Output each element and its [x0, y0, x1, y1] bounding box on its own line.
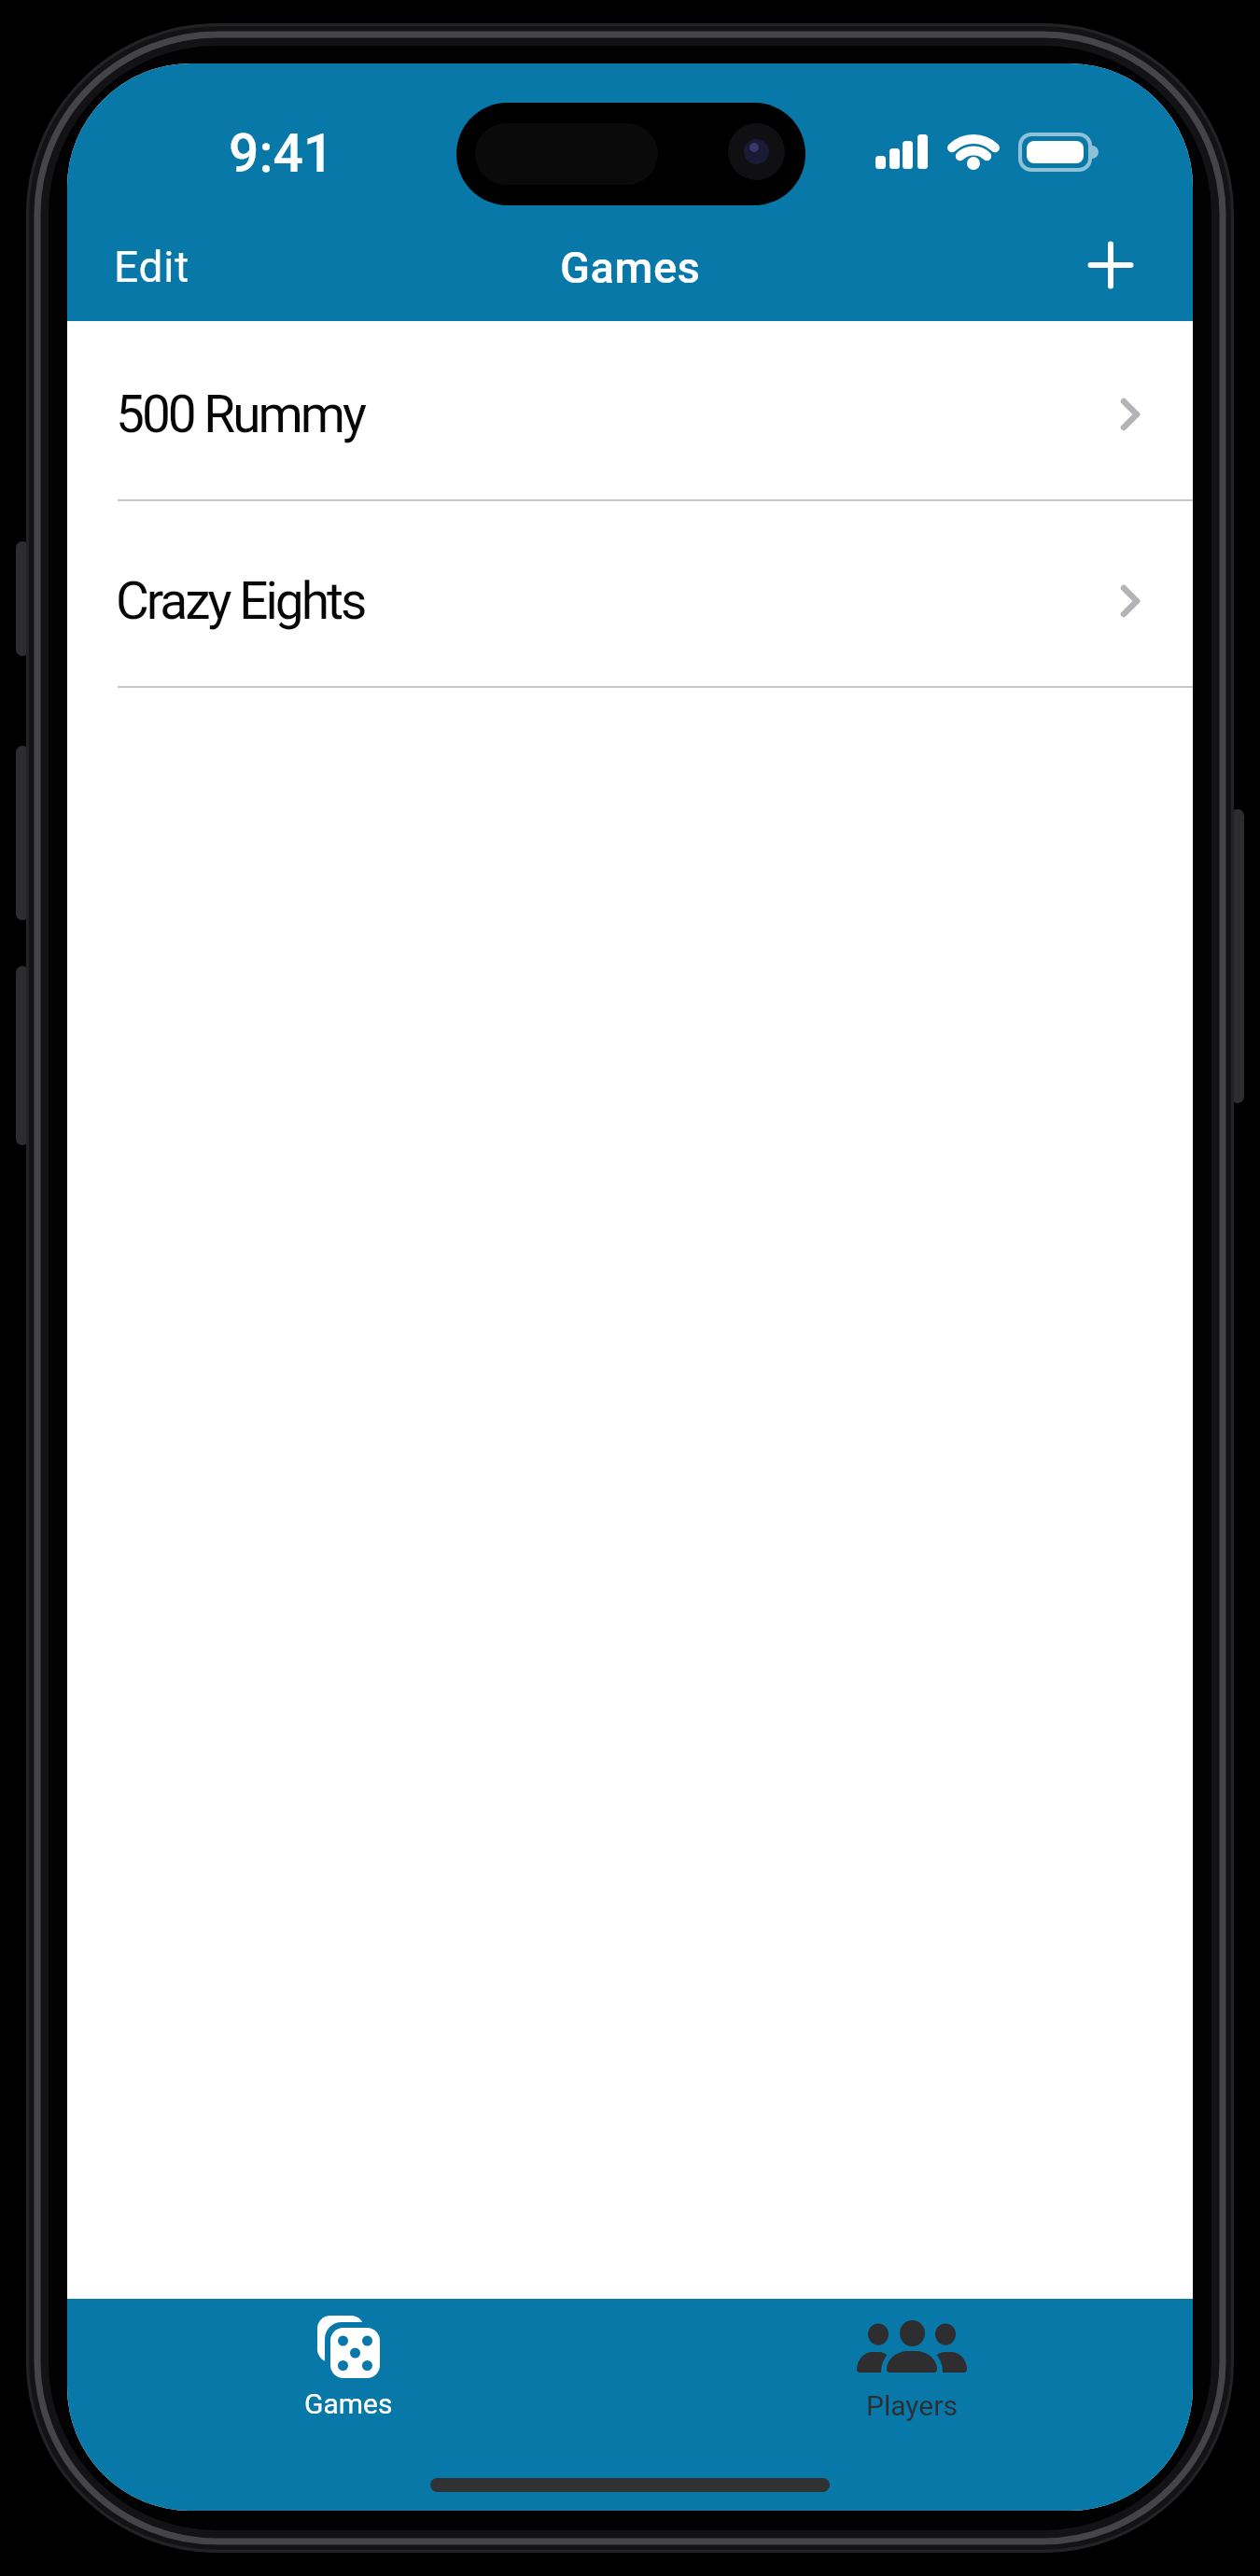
staticText: Games [304, 2387, 393, 2420]
staticText: 500 Rummy [116, 385, 365, 444]
staticText: Games [560, 242, 701, 293]
button[interactable]: Players [630, 2299, 1193, 2511]
button[interactable] [1055, 209, 1167, 321]
button[interactable]: Games [67, 2299, 630, 2511]
staticText: 9:41 [229, 122, 334, 185]
staticText: Edit [114, 242, 190, 292]
button[interactable]: Crazy Eights [67, 501, 1193, 686]
staticText: Players [866, 2389, 958, 2422]
button[interactable]: Edit [95, 230, 282, 304]
staticText: Crazy Eights [116, 571, 365, 631]
button[interactable]: 500 Rummy [67, 321, 1193, 499]
